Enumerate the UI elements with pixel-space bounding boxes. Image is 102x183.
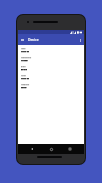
staticText: google — [21, 68, 27, 70]
staticText: Device — [28, 37, 39, 42]
staticText: angler — [21, 86, 27, 88]
staticText: Huawei — [21, 59, 28, 61]
button[interactable]: Back — [29, 146, 35, 152]
staticText: Manufacturer — [21, 56, 32, 58]
staticText: Manufacturer — [21, 56, 32, 58]
button[interactable]: More options — [77, 37, 83, 43]
staticText: Name — [21, 47, 26, 49]
staticText: Nexus 6P — [21, 77, 30, 79]
staticText: Manufacturer — [21, 57, 32, 59]
staticText: Model — [21, 74, 26, 76]
staticText: Huawei — [21, 59, 28, 61]
staticText: Codename — [21, 84, 30, 86]
staticText: Model — [21, 74, 26, 76]
staticText: angler — [21, 86, 27, 88]
staticText: Nexus 6P — [21, 77, 30, 79]
button[interactable]: Brand — [18, 63, 84, 72]
staticText: Name — [21, 47, 26, 49]
staticText: Huawei — [21, 59, 28, 61]
button[interactable]: Codename — [18, 81, 84, 90]
staticText: Nexus 6P — [21, 78, 30, 80]
staticText: Nexus 6P — [21, 77, 30, 79]
staticText: angler — [21, 86, 27, 88]
staticText: Nexus 6P — [21, 50, 30, 52]
staticText: Name — [21, 48, 26, 50]
button[interactable]: Open navigation menu — [19, 37, 25, 43]
button[interactable]: Model — [18, 72, 84, 81]
staticText: google — [21, 69, 27, 71]
staticText: Codename — [21, 83, 30, 85]
button[interactable]: Name — [18, 45, 84, 54]
button[interactable]: Recent apps — [67, 146, 73, 152]
staticText: angler — [21, 87, 27, 89]
staticText: Nexus 6P — [21, 50, 30, 52]
staticText: Codename — [21, 83, 30, 85]
staticText: Nexus 6P — [21, 51, 30, 53]
button[interactable]: Home — [48, 146, 54, 152]
staticText: Brand — [21, 65, 26, 67]
staticText: Nexus 6P — [21, 50, 30, 52]
button[interactable]: Manufacturer — [18, 54, 84, 63]
staticText: Brand — [21, 66, 26, 68]
staticText: google — [21, 68, 27, 70]
staticText: Huawei — [21, 60, 28, 62]
staticText: Brand — [21, 65, 26, 67]
button[interactable]: Open navigation menu — [18, 34, 84, 45]
staticText: google — [21, 68, 27, 70]
staticText: Model — [21, 75, 26, 77]
